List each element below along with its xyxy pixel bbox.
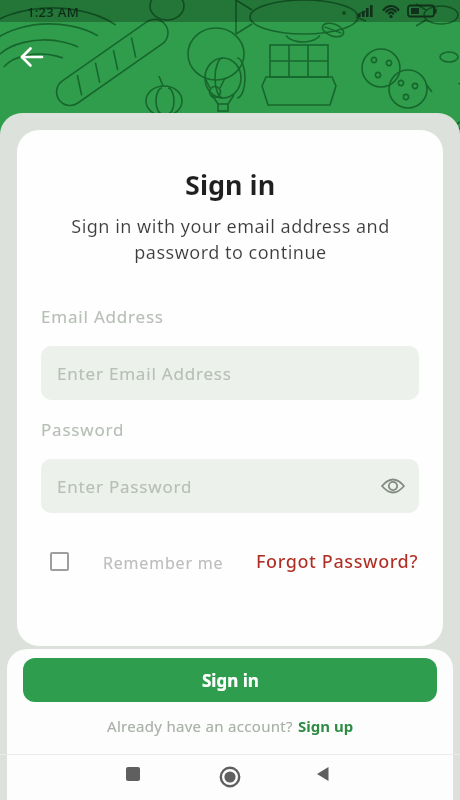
button[interactable]: Enter Password: [41, 459, 419, 513]
staticText: Sign in: [185, 166, 276, 203]
staticText: Sign in: [202, 669, 259, 692]
button[interactable]: Forgot Password?: [256, 549, 419, 574]
staticText: Password: [41, 418, 125, 441]
staticText: Enter Email Address: [57, 362, 232, 385]
button[interactable]: [109, 750, 157, 798]
button[interactable]: Sign up: [298, 716, 354, 736]
button[interactable]: [50, 552, 69, 571]
button[interactable]: [10, 36, 54, 80]
button[interactable]: Sign in: [23, 658, 437, 702]
button[interactable]: [299, 750, 347, 798]
staticText: Email Address: [41, 305, 164, 328]
staticText: Already have an account?: [107, 716, 298, 736]
staticText: Remember me: [103, 552, 224, 574]
staticText: Sign in with your email address and pass…: [71, 214, 390, 264]
button[interactable]: Enter Email Address: [41, 346, 419, 400]
staticText: 1:23 AM: [27, 3, 80, 21]
staticText: Enter Password: [57, 475, 193, 498]
button[interactable]: [206, 753, 254, 800]
